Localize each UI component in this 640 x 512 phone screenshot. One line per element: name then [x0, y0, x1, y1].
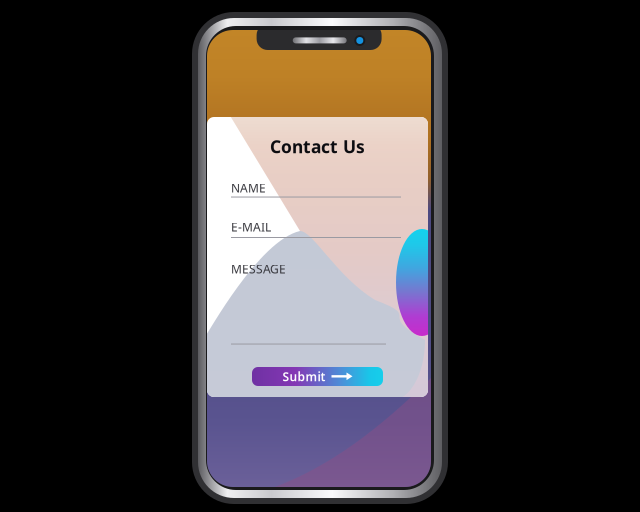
staticText: Submit [282, 368, 325, 384]
button[interactable]: Submit [252, 367, 383, 386]
button[interactable]: MESSAGE [231, 261, 388, 352]
staticText: MESSAGE [231, 261, 286, 277]
staticText: E-MAIL [231, 219, 271, 235]
button[interactable]: NAME [231, 180, 403, 205]
staticText: NAME [231, 180, 266, 196]
button[interactable]: E-MAIL [231, 219, 403, 246]
staticText: Contact Us [270, 135, 365, 158]
